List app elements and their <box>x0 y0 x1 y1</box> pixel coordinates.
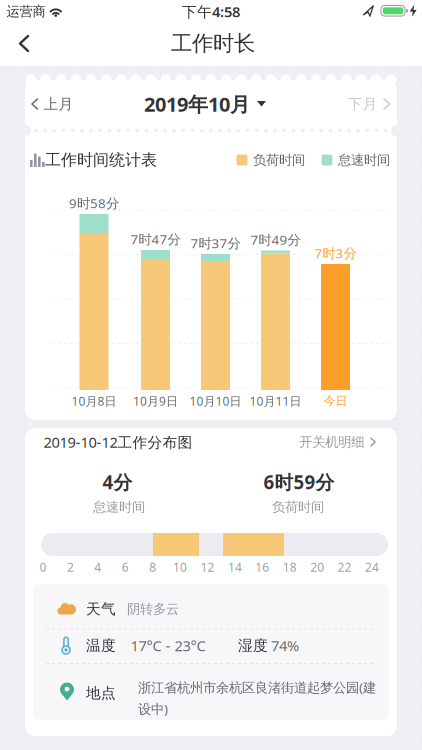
staticText: 10 <box>173 559 187 575</box>
staticText: 阴转多云 <box>127 601 179 617</box>
staticText: 10月9日 <box>133 393 178 409</box>
staticText: 7时49分 <box>250 231 300 248</box>
staticText: 负荷时间 <box>272 499 324 515</box>
staticText: 2 <box>67 559 74 575</box>
staticText: 6 <box>122 559 129 575</box>
button[interactable]: 下月 <box>347 95 390 113</box>
staticText: 10月10日 <box>189 393 241 409</box>
staticText: 今日 <box>323 394 347 408</box>
staticText: 开关机明细 <box>299 434 364 450</box>
staticText: 22 <box>338 559 352 575</box>
staticText: 17°C - 23°C <box>130 636 205 655</box>
staticText: 0 <box>39 559 46 575</box>
staticText: 2019年10月 <box>144 91 250 117</box>
staticText: 12 <box>200 559 214 575</box>
staticText: 怠速时间 <box>338 152 390 168</box>
staticText: 9时58分 <box>69 194 119 212</box>
button[interactable]: 2019年10月 <box>144 91 266 117</box>
staticText: 湿度 <box>238 636 268 654</box>
staticText: 8 <box>149 559 156 575</box>
staticText: 10月11日 <box>249 393 301 409</box>
staticText: 20 <box>310 559 324 575</box>
button[interactable]: 开关机明细 <box>299 434 377 450</box>
staticText: 7时47分 <box>130 230 180 248</box>
staticText: 下午4:58 <box>182 2 240 21</box>
staticText: 10月8日 <box>71 393 116 409</box>
staticText: 7时37分 <box>190 234 240 252</box>
staticText: 24 <box>365 559 379 575</box>
button[interactable]: 上月 <box>30 95 73 113</box>
staticText: 温度 <box>86 636 116 654</box>
staticText: 工作时长 <box>171 30 255 57</box>
staticText: 4 <box>94 559 101 575</box>
staticText: 6时59分 <box>263 470 334 494</box>
staticText: 18 <box>283 559 297 575</box>
staticText: 14 <box>228 559 242 575</box>
staticText: 上月 <box>43 95 73 113</box>
staticText: 4分 <box>102 470 132 494</box>
staticText: 怠速时间 <box>93 499 145 515</box>
staticText: 负荷时间 <box>253 152 305 168</box>
staticText: 浙江省杭州市余杭区良渚街道起梦公园(建 <box>138 678 376 696</box>
staticText: 7时3分 <box>314 244 356 262</box>
staticText: 地点 <box>86 684 116 702</box>
staticText: 下月 <box>347 95 377 113</box>
staticText: 16 <box>255 559 269 575</box>
staticText: 天气 <box>86 600 116 618</box>
staticText: 设中) <box>138 700 168 718</box>
staticText: 2019-10-12工作分布图 <box>43 432 192 452</box>
staticText: 工作时间统计表 <box>45 150 157 170</box>
staticText: 运营商 <box>6 3 45 20</box>
staticText: 74% <box>271 636 299 655</box>
button[interactable]: 返回 <box>12 31 36 56</box>
